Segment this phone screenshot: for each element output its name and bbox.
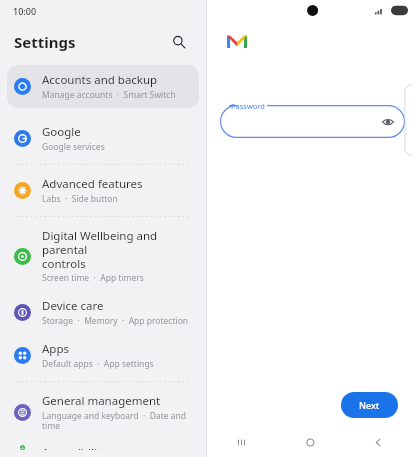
staticText: Settings: [14, 32, 166, 52]
button[interactable]: Recents: [207, 427, 276, 457]
button[interactable]: Password: [220, 105, 405, 138]
staticText: Language and keyboard · Date and time: [42, 410, 189, 431]
button[interactable]: Apps: [7, 334, 199, 377]
staticText: General management: [42, 393, 161, 409]
button[interactable]: Search: [166, 29, 192, 55]
staticText: Next: [359, 399, 380, 411]
staticText: Default apps · App settings: [42, 358, 154, 370]
staticText: Apps: [42, 341, 70, 357]
button[interactable]: Next: [341, 392, 398, 418]
button[interactable]: Digital Wellbeing and parental controls: [7, 221, 199, 291]
button[interactable]: Advanced features: [7, 169, 199, 212]
staticText: Accounts and backup: [42, 72, 158, 88]
button[interactable]: Device care: [7, 291, 199, 334]
staticText: 10:00: [13, 5, 37, 17]
button[interactable]: General management: [7, 386, 199, 438]
staticText: Manage accounts · Smart Switch: [42, 89, 176, 101]
button[interactable]: Accessibility: [7, 438, 199, 457]
staticText: Device care: [42, 298, 104, 314]
staticText: Google: [42, 124, 81, 140]
staticText: Password: [231, 101, 265, 111]
staticText: Digital Wellbeing and parental controls: [42, 228, 189, 271]
button[interactable]: Accounts and backup: [7, 65, 199, 108]
button[interactable]: Google: [7, 117, 199, 160]
button[interactable]: Back: [344, 427, 412, 457]
staticText: Labs · Side button: [42, 193, 118, 205]
staticText: Screen time · App timers: [42, 272, 144, 284]
staticText: Advanced features: [42, 176, 143, 192]
staticText: Google services: [42, 141, 105, 153]
button[interactable]: Show password: [379, 113, 397, 131]
button[interactable]: Home: [276, 427, 344, 457]
staticText: Storage · Memory · App protection: [42, 315, 189, 327]
staticText: Accessibility: [42, 445, 107, 450]
